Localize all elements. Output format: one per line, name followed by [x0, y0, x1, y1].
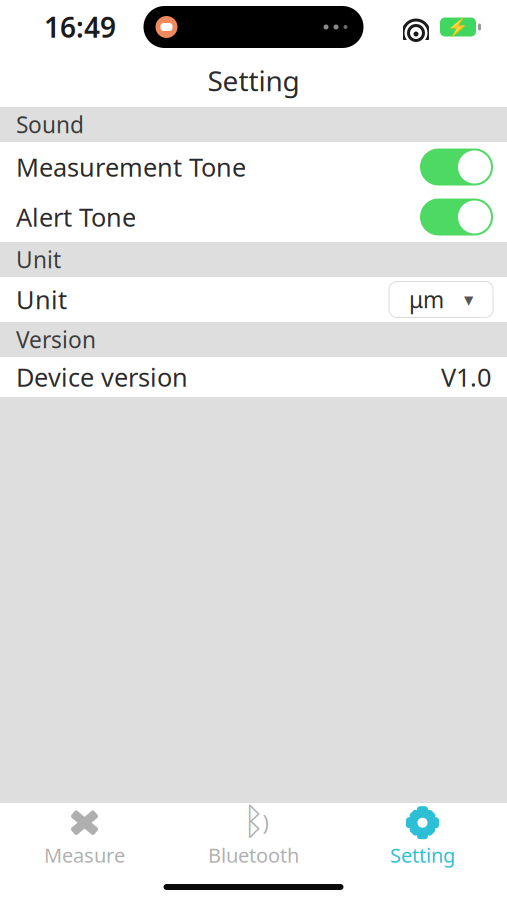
staticText: Measure: [44, 842, 125, 868]
button[interactable]: ᛒ: [169, 807, 338, 869]
button[interactable]: Alert Tone: [0, 192, 507, 242]
staticText: V1.0: [441, 360, 491, 394]
staticText: Sound: [16, 109, 84, 139]
button[interactable]: Setting: [338, 807, 507, 869]
button[interactable]: Measure: [0, 807, 169, 869]
staticText: 16:49: [44, 8, 116, 46]
staticText: Setting: [207, 62, 299, 99]
staticText: ): [262, 809, 268, 837]
staticText: Unit: [16, 283, 67, 316]
staticText: Device version: [16, 360, 188, 394]
button[interactable]: Measurement Tone: [0, 142, 507, 192]
staticText: ⚡: [447, 17, 469, 37]
staticText: Version: [16, 324, 96, 354]
staticText: ᛒ: [242, 804, 264, 841]
staticText: μm: [409, 284, 444, 314]
staticText: Bluetooth: [208, 842, 299, 868]
staticText: Measurement Tone: [16, 150, 246, 184]
staticText: Alert Tone: [16, 200, 136, 234]
button[interactable]: Unit: [0, 277, 507, 322]
staticText: Setting: [390, 842, 455, 868]
staticText: Unit: [16, 244, 61, 274]
staticText: ▾: [464, 289, 473, 310]
